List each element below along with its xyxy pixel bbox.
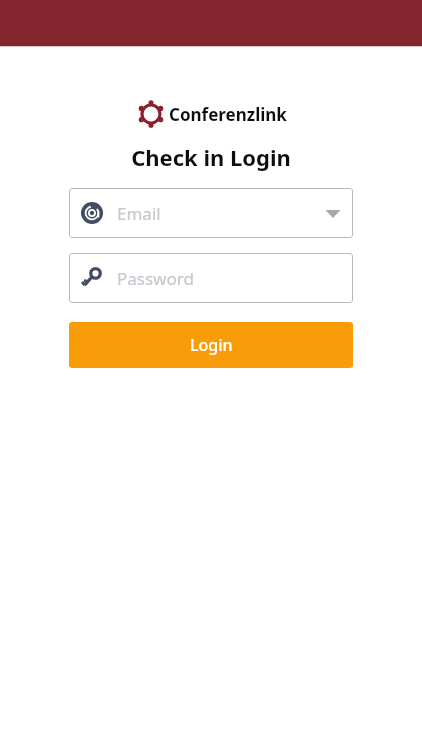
staticText: Login — [190, 334, 233, 356]
other: Show email suggestions — [324, 204, 342, 222]
button[interactable]: Email — [69, 188, 353, 238]
staticText: Email — [117, 202, 161, 225]
button[interactable]: Password — [69, 253, 353, 303]
staticText: Password — [117, 267, 194, 290]
button[interactable]: Login — [69, 322, 353, 368]
staticText: Check in Login — [0, 142, 422, 172]
staticText: Conferenzlink — [169, 103, 287, 126]
